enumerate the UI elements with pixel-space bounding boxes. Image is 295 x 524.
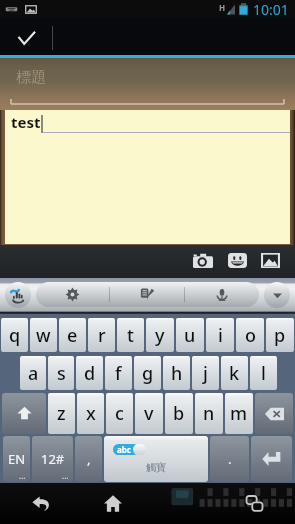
button[interactable]: Edit [110, 282, 184, 307]
staticText: w [36, 323, 51, 348]
staticText: ... [62, 470, 69, 481]
staticText: y [155, 323, 165, 348]
staticText: a [28, 361, 39, 386]
button[interactable]: . [210, 436, 249, 482]
button[interactable]: Shift [2, 393, 46, 434]
staticText: j [203, 361, 208, 386]
button[interactable]: t [117, 318, 144, 352]
button[interactable]: l [250, 356, 277, 390]
staticText: , [87, 450, 91, 468]
staticText: c [115, 401, 124, 426]
button[interactable]: Hide keyboard [264, 282, 290, 308]
staticText: h [171, 361, 183, 386]
button[interactable]: Recent apps [143, 483, 295, 524]
staticText: s [57, 361, 66, 386]
button[interactable]: Backspace [255, 393, 293, 434]
staticText: z [57, 401, 66, 426]
staticText: t [127, 323, 134, 348]
button[interactable]: f [105, 356, 132, 390]
staticText: q [9, 323, 21, 348]
staticText: H [219, 2, 226, 13]
button[interactable]: w [30, 318, 57, 352]
button[interactable]: c [106, 393, 133, 434]
staticText: x [86, 401, 96, 426]
staticText: 標題 [16, 68, 46, 87]
button[interactable]: Emoji [228, 253, 247, 268]
staticText: g [142, 361, 154, 386]
staticText: b [173, 401, 185, 426]
staticText: . [228, 450, 232, 468]
staticText: ... [19, 470, 26, 481]
button[interactable]: Back [0, 483, 82, 524]
staticText: i [218, 323, 223, 348]
button[interactable]: 12# [32, 436, 73, 482]
staticText: p [274, 323, 286, 348]
button[interactable]: Enter [251, 436, 292, 482]
button[interactable]: v [135, 393, 163, 434]
button[interactable]: e [59, 318, 86, 352]
button[interactable]: Input method [5, 282, 31, 308]
button[interactable]: x [77, 393, 104, 434]
button[interactable]: h [163, 356, 190, 390]
button[interactable]: Settings [36, 282, 109, 307]
staticText: l [261, 361, 266, 386]
staticText: 觸寶 [146, 461, 166, 474]
staticText: u [184, 323, 196, 348]
button[interactable]: y [146, 318, 174, 352]
staticText: v [144, 401, 154, 426]
button[interactable]: Done [0, 18, 52, 58]
staticText: r [98, 323, 106, 348]
staticText: 12# [41, 450, 65, 468]
button[interactable]: m [225, 393, 253, 434]
button[interactable]: Gallery [261, 253, 280, 268]
button[interactable]: Home [82, 483, 143, 524]
staticText: o [245, 323, 256, 348]
staticText: EN [8, 450, 26, 468]
button[interactable]: j [192, 356, 219, 390]
staticText: n [203, 401, 215, 426]
button[interactable]: r [88, 318, 115, 352]
staticText: d [84, 361, 96, 386]
button[interactable]: o [236, 318, 264, 352]
button[interactable]: g [134, 356, 161, 390]
button[interactable]: q [1, 318, 28, 352]
staticText: 10:01 [253, 0, 289, 18]
button[interactable]: EN [3, 436, 30, 482]
button[interactable]: b [165, 393, 193, 434]
button[interactable]: d [76, 356, 103, 390]
button[interactable]: u [176, 318, 204, 352]
button[interactable]: n [195, 393, 223, 434]
staticText: test [11, 112, 41, 132]
button[interactable]: z [48, 393, 75, 434]
button[interactable]: k [221, 356, 248, 390]
button[interactable]: s [48, 356, 74, 390]
staticText: k [229, 361, 240, 386]
button[interactable]: Camera [193, 253, 213, 268]
button[interactable]: a [20, 356, 46, 390]
staticText: abc [117, 444, 131, 455]
staticText: f [115, 361, 122, 386]
button[interactable]: p [266, 318, 294, 352]
staticText: m [230, 401, 248, 426]
button[interactable]: Voice input [185, 282, 259, 307]
button[interactable]: i [206, 318, 234, 352]
button[interactable]: Space [104, 436, 208, 482]
button[interactable]: , [75, 436, 102, 482]
staticText: e [67, 323, 78, 348]
